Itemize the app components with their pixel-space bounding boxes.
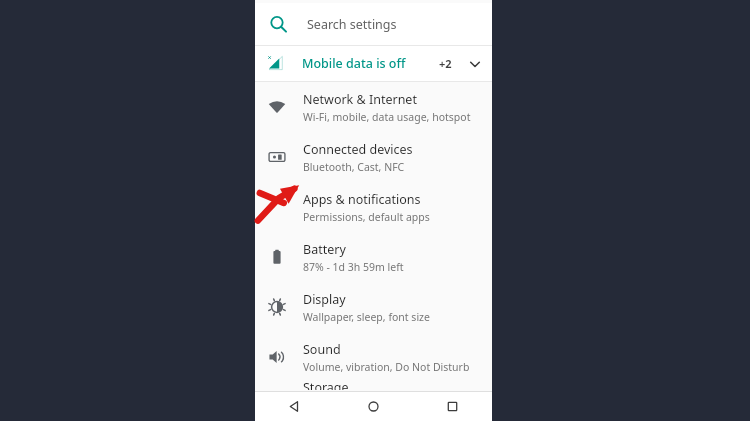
button[interactable]: Expand: [464, 53, 486, 75]
button[interactable]: Network & Internet: [255, 82, 492, 132]
staticText: Wi-Fi, mobile, data usage, hotspot: [303, 110, 471, 124]
staticText: +2: [439, 56, 452, 71]
button[interactable]: Apps & notifications: [255, 182, 492, 232]
staticText: Permissions, default apps: [303, 210, 430, 224]
button[interactable]: Mobile data is off: [255, 46, 492, 81]
staticText: Apps & notifications: [303, 191, 421, 208]
button[interactable]: Sound: [255, 332, 492, 382]
button[interactable]: Connected devices: [255, 132, 492, 182]
staticText: Bluetooth, Cast, NFC: [303, 160, 405, 174]
staticText: Mobile data is off: [302, 55, 406, 72]
staticText: Storage: [303, 379, 349, 390]
button[interactable]: Search settings: [255, 3, 492, 45]
button[interactable]: Display: [255, 282, 492, 332]
button[interactable]: Storage: [255, 382, 492, 393]
staticText: Wallpaper, sleep, font size: [303, 310, 430, 324]
button[interactable]: Home: [334, 391, 413, 421]
button[interactable]: Back: [255, 391, 334, 421]
button[interactable]: Battery: [255, 232, 492, 282]
staticText: 87% - 1d 3h 59m left: [303, 260, 404, 274]
staticText: Display: [303, 291, 346, 308]
staticText: Battery: [303, 241, 346, 258]
staticText: Volume, vibration, Do Not Disturb: [303, 360, 470, 374]
staticText: Connected devices: [303, 141, 413, 158]
staticText: Search settings: [307, 16, 397, 33]
button[interactable]: Recent apps: [413, 391, 492, 421]
staticText: Sound: [303, 341, 341, 358]
staticText: Network & Internet: [303, 91, 417, 108]
